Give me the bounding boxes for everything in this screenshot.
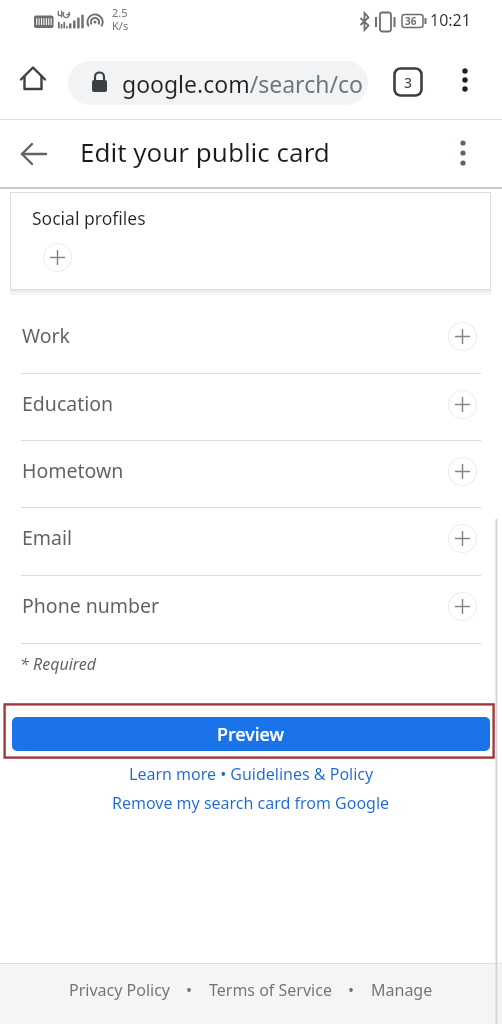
button[interactable]: Terms of Service: [209, 979, 332, 1001]
button[interactable]: Privacy Policy: [69, 979, 170, 1001]
staticText: Social profiles: [32, 206, 146, 230]
staticText: K/s: [112, 18, 129, 33]
button[interactable]: Home: [16, 63, 50, 97]
staticText: 2.5: [112, 5, 128, 20]
staticText: Edit your public card: [80, 134, 330, 169]
button[interactable]: Add: [447, 389, 478, 420]
button[interactable]: Add: [447, 456, 478, 487]
button[interactable]: Add: [447, 523, 478, 554]
button[interactable]: Phone number: [0, 576, 502, 644]
staticText: •: [348, 979, 355, 1001]
staticText: * Required: [20, 653, 97, 675]
staticText: Hometown: [22, 457, 124, 484]
button[interactable]: Back: [17, 137, 51, 171]
staticText: 10:21: [430, 9, 471, 31]
staticText: Email: [22, 524, 73, 551]
button[interactable]: Work: [0, 306, 502, 374]
button[interactable]: Add: [447, 321, 478, 352]
staticText: google.com/search/co: [122, 68, 363, 99]
button[interactable]: Preview: [12, 717, 490, 751]
button[interactable]: Remove my search card from Google: [0, 792, 502, 814]
button[interactable]: Add: [447, 591, 478, 622]
staticText: Learn more • Guidelines & Policy: [129, 763, 374, 785]
button[interactable]: More options: [448, 63, 482, 97]
staticText: Preview: [217, 722, 285, 747]
staticText: •: [186, 979, 193, 1001]
button[interactable]: Tabs: [393, 67, 423, 97]
button[interactable]: Add: [42, 242, 73, 273]
button[interactable]: google.com/search/co: [68, 61, 368, 105]
button[interactable]: Learn more • Guidelines & Policy: [0, 763, 502, 785]
staticText: Work: [22, 322, 71, 349]
button[interactable]: Education: [0, 374, 502, 441]
staticText: 3: [404, 73, 413, 92]
button[interactable]: Email: [0, 508, 502, 576]
button[interactable]: Hometown: [0, 441, 502, 508]
staticText: Remove my search card from Google: [112, 792, 390, 814]
staticText: Education: [22, 390, 114, 417]
button[interactable]: Page menu: [446, 136, 480, 170]
staticText: 36: [405, 14, 417, 28]
button[interactable]: Manage: [371, 979, 433, 1001]
staticText: Phone number: [22, 592, 160, 619]
